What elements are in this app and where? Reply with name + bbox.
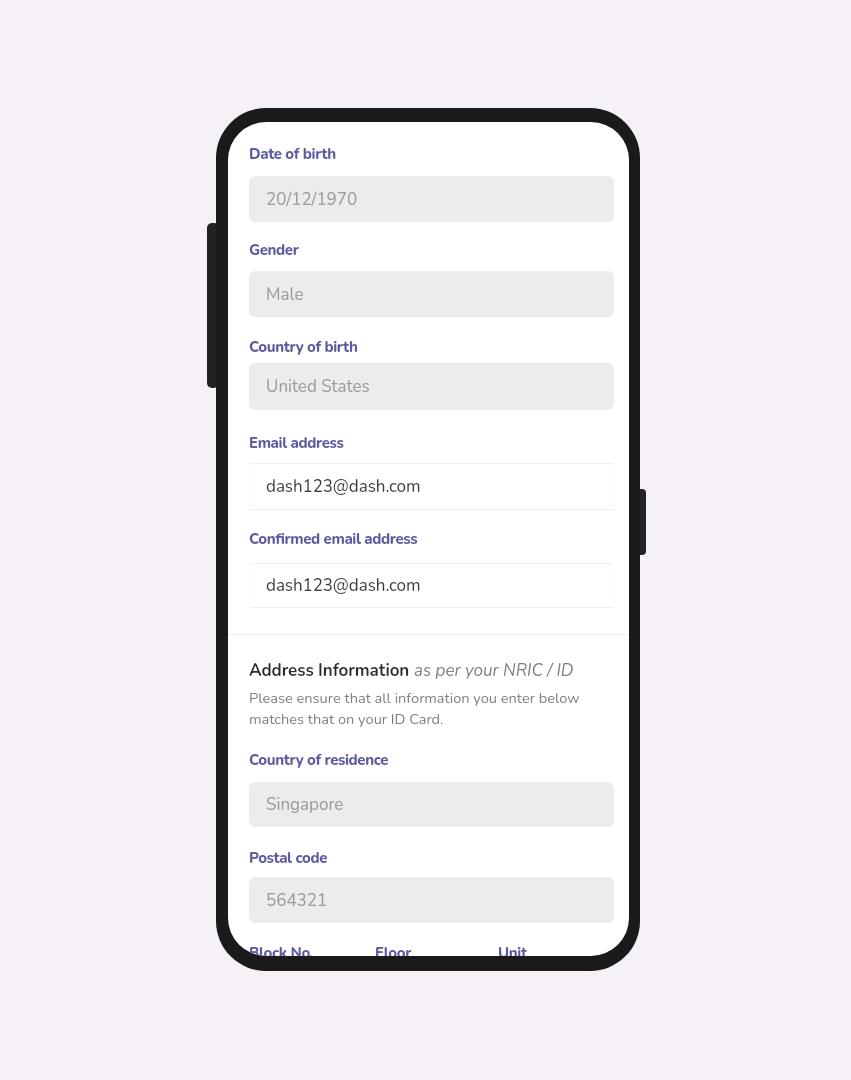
staticText: Gender [249, 240, 299, 260]
staticText: Country of birth [249, 337, 358, 357]
staticText: Confirmed email address [249, 529, 418, 549]
staticText: Please ensure that all information you e… [249, 688, 585, 729]
button[interactable]: dash123@dash.com [249, 563, 614, 608]
staticText: United States [266, 375, 370, 398]
button[interactable]: 564321 [249, 877, 614, 923]
staticText: dash123@dash.com [266, 475, 421, 498]
button[interactable]: United States [249, 363, 614, 410]
staticText: as per your NRIC / ID [414, 659, 574, 682]
button[interactable]: 20/12/1970 [249, 176, 614, 222]
staticText: Unit [498, 943, 527, 956]
staticText: Email address [249, 433, 344, 453]
staticText: 564321 [266, 889, 328, 912]
staticText: Country of residence [249, 750, 389, 770]
staticText: Block No. [249, 943, 314, 956]
staticText: Postal code [249, 848, 328, 868]
staticText: Male [266, 283, 304, 306]
staticText: Address Information [249, 659, 410, 682]
button[interactable]: dash123@dash.com [249, 463, 614, 510]
staticText: dash123@dash.com [266, 574, 421, 597]
staticText: 20/12/1970 [266, 188, 358, 211]
button[interactable]: Singapore [249, 782, 614, 827]
staticText: Singapore [266, 793, 344, 816]
button[interactable]: Male [249, 271, 614, 317]
staticText: Floor [375, 943, 411, 956]
staticText: Date of birth [249, 144, 336, 164]
